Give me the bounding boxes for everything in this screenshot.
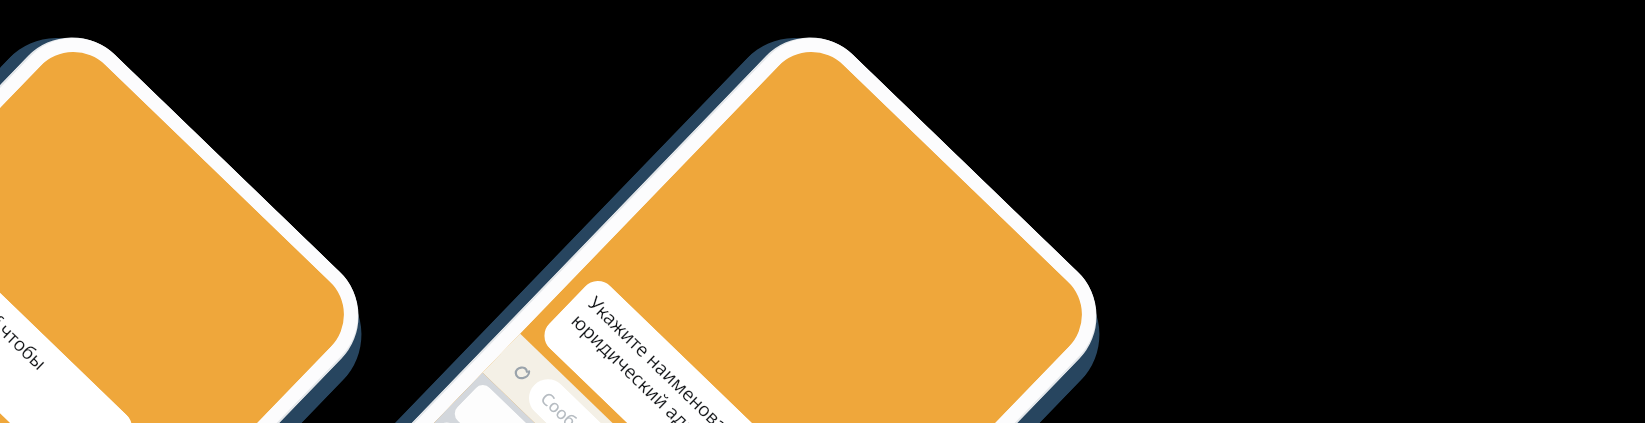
staticText: Нажмите /off чтобы приостановить	[0, 230, 122, 423]
staticText: Укажите наименование и юридический адрес…	[566, 290, 802, 423]
staticText: Сообщение...	[536, 387, 631, 423]
button[interactable]: Сообщение...	[521, 371, 746, 423]
button[interactable]: Сообщение...	[0, 348, 30, 423]
button[interactable]: Нажмите /off чтобы приостановить	[0, 213, 139, 423]
button[interactable]: Укажите наименование и юридический адрес…	[537, 274, 819, 423]
button[interactable]: Регистрация ООО	[451, 381, 765, 423]
button[interactable]: Меню	[0, 358, 49, 423]
button[interactable]: Attach	[496, 347, 547, 398]
button[interactable]: Ликвидация ООО/ИП	[0, 395, 13, 423]
button[interactable]: Регистрация ИП	[414, 418, 728, 423]
